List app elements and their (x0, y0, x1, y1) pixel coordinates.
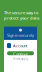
staticText: The secure way to (4, 10, 38, 15)
staticText: Sign in securely (7, 33, 34, 38)
staticText: Account (13, 43, 27, 48)
button[interactable]: Continue (7, 51, 34, 55)
staticText: Continue (13, 51, 28, 55)
staticText: protect your data (4, 15, 39, 21)
staticText: Terms apply (13, 57, 28, 61)
